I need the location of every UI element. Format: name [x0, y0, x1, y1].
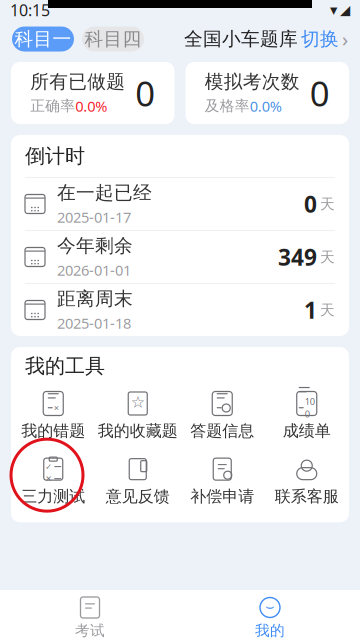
- staticText: 我的工具: [25, 354, 105, 378]
- staticText: 0: [135, 70, 155, 116]
- button[interactable]: ×: [11, 385, 95, 447]
- button[interactable]: 科目一: [12, 26, 74, 51]
- button[interactable]: 距离周末: [11, 284, 349, 336]
- staticText: 0: [304, 189, 317, 219]
- staticText: 切换: [301, 27, 339, 50]
- staticText: 2025-01-17: [57, 207, 131, 227]
- staticText: ✓: [45, 462, 52, 471]
- button[interactable]: 模拟考次数: [185, 62, 349, 124]
- button[interactable]: 科目四: [82, 26, 144, 51]
- button[interactable]: [180, 385, 264, 447]
- staticText: 天: [320, 248, 335, 266]
- staticText: 我的收藏题: [98, 421, 178, 441]
- staticText: 科目一: [14, 27, 71, 50]
- staticText: 今年剩余: [57, 234, 133, 257]
- staticText: 模拟考次数: [205, 70, 300, 93]
- button[interactable]: 在一起已经: [11, 178, 349, 230]
- button[interactable]: ☆: [95, 385, 180, 447]
- staticText: 正确率: [30, 97, 75, 115]
- button[interactable]: 联系客服: [264, 451, 349, 512]
- staticText: ›: [342, 26, 348, 52]
- staticText: ☆: [131, 393, 145, 411]
- button[interactable]: 100: [264, 385, 349, 447]
- staticText: 补偿申请: [190, 487, 254, 506]
- staticText: 天: [320, 195, 335, 213]
- staticText: 天: [320, 301, 335, 319]
- button[interactable]: 补偿申请: [180, 451, 264, 512]
- staticText: 考试: [75, 621, 105, 639]
- staticText: 100: [305, 395, 315, 420]
- staticText: 科目四: [84, 27, 141, 50]
- button[interactable]: 全国小车题库: [184, 26, 348, 52]
- staticText: 全国小车题库: [184, 27, 298, 50]
- staticText: ⌣: [265, 599, 275, 614]
- staticText: 0: [310, 70, 330, 116]
- staticText: 2025-01-18: [57, 313, 131, 333]
- button[interactable]: 今年剩余: [11, 231, 349, 283]
- staticText: 10:15: [10, 0, 50, 21]
- staticText: 成绩单: [283, 421, 331, 441]
- staticText: ×: [54, 401, 59, 414]
- staticText: 三力测试: [21, 487, 85, 506]
- staticText: 联系客服: [275, 487, 339, 506]
- staticText: ✕: [45, 474, 52, 483]
- staticText: 1: [304, 295, 317, 325]
- button[interactable]: ⌣: [180, 596, 360, 639]
- staticText: 在一起已经: [57, 181, 152, 204]
- staticText: 距离周末: [57, 287, 133, 310]
- staticText: ▾: [330, 2, 337, 18]
- staticText: 及格率: [205, 97, 250, 115]
- staticText: 349: [278, 242, 317, 272]
- staticText: 2026-01-01: [57, 260, 131, 280]
- staticText: 0.0%: [250, 96, 282, 116]
- button[interactable]: 考试: [0, 596, 180, 639]
- staticText: 答题信息: [190, 421, 254, 441]
- staticText: 倒计时: [25, 144, 85, 168]
- button[interactable]: 所有已做题: [11, 62, 174, 124]
- button[interactable]: ✓: [11, 451, 95, 512]
- staticText: 0.0%: [75, 96, 107, 116]
- staticText: 意见反馈: [106, 487, 170, 506]
- staticText: 我的: [255, 621, 285, 639]
- staticText: ◢: [340, 2, 350, 17]
- staticText: 我的错题: [21, 421, 85, 441]
- button[interactable]: 意见反馈: [95, 451, 180, 512]
- staticText: 所有已做题: [30, 70, 125, 93]
